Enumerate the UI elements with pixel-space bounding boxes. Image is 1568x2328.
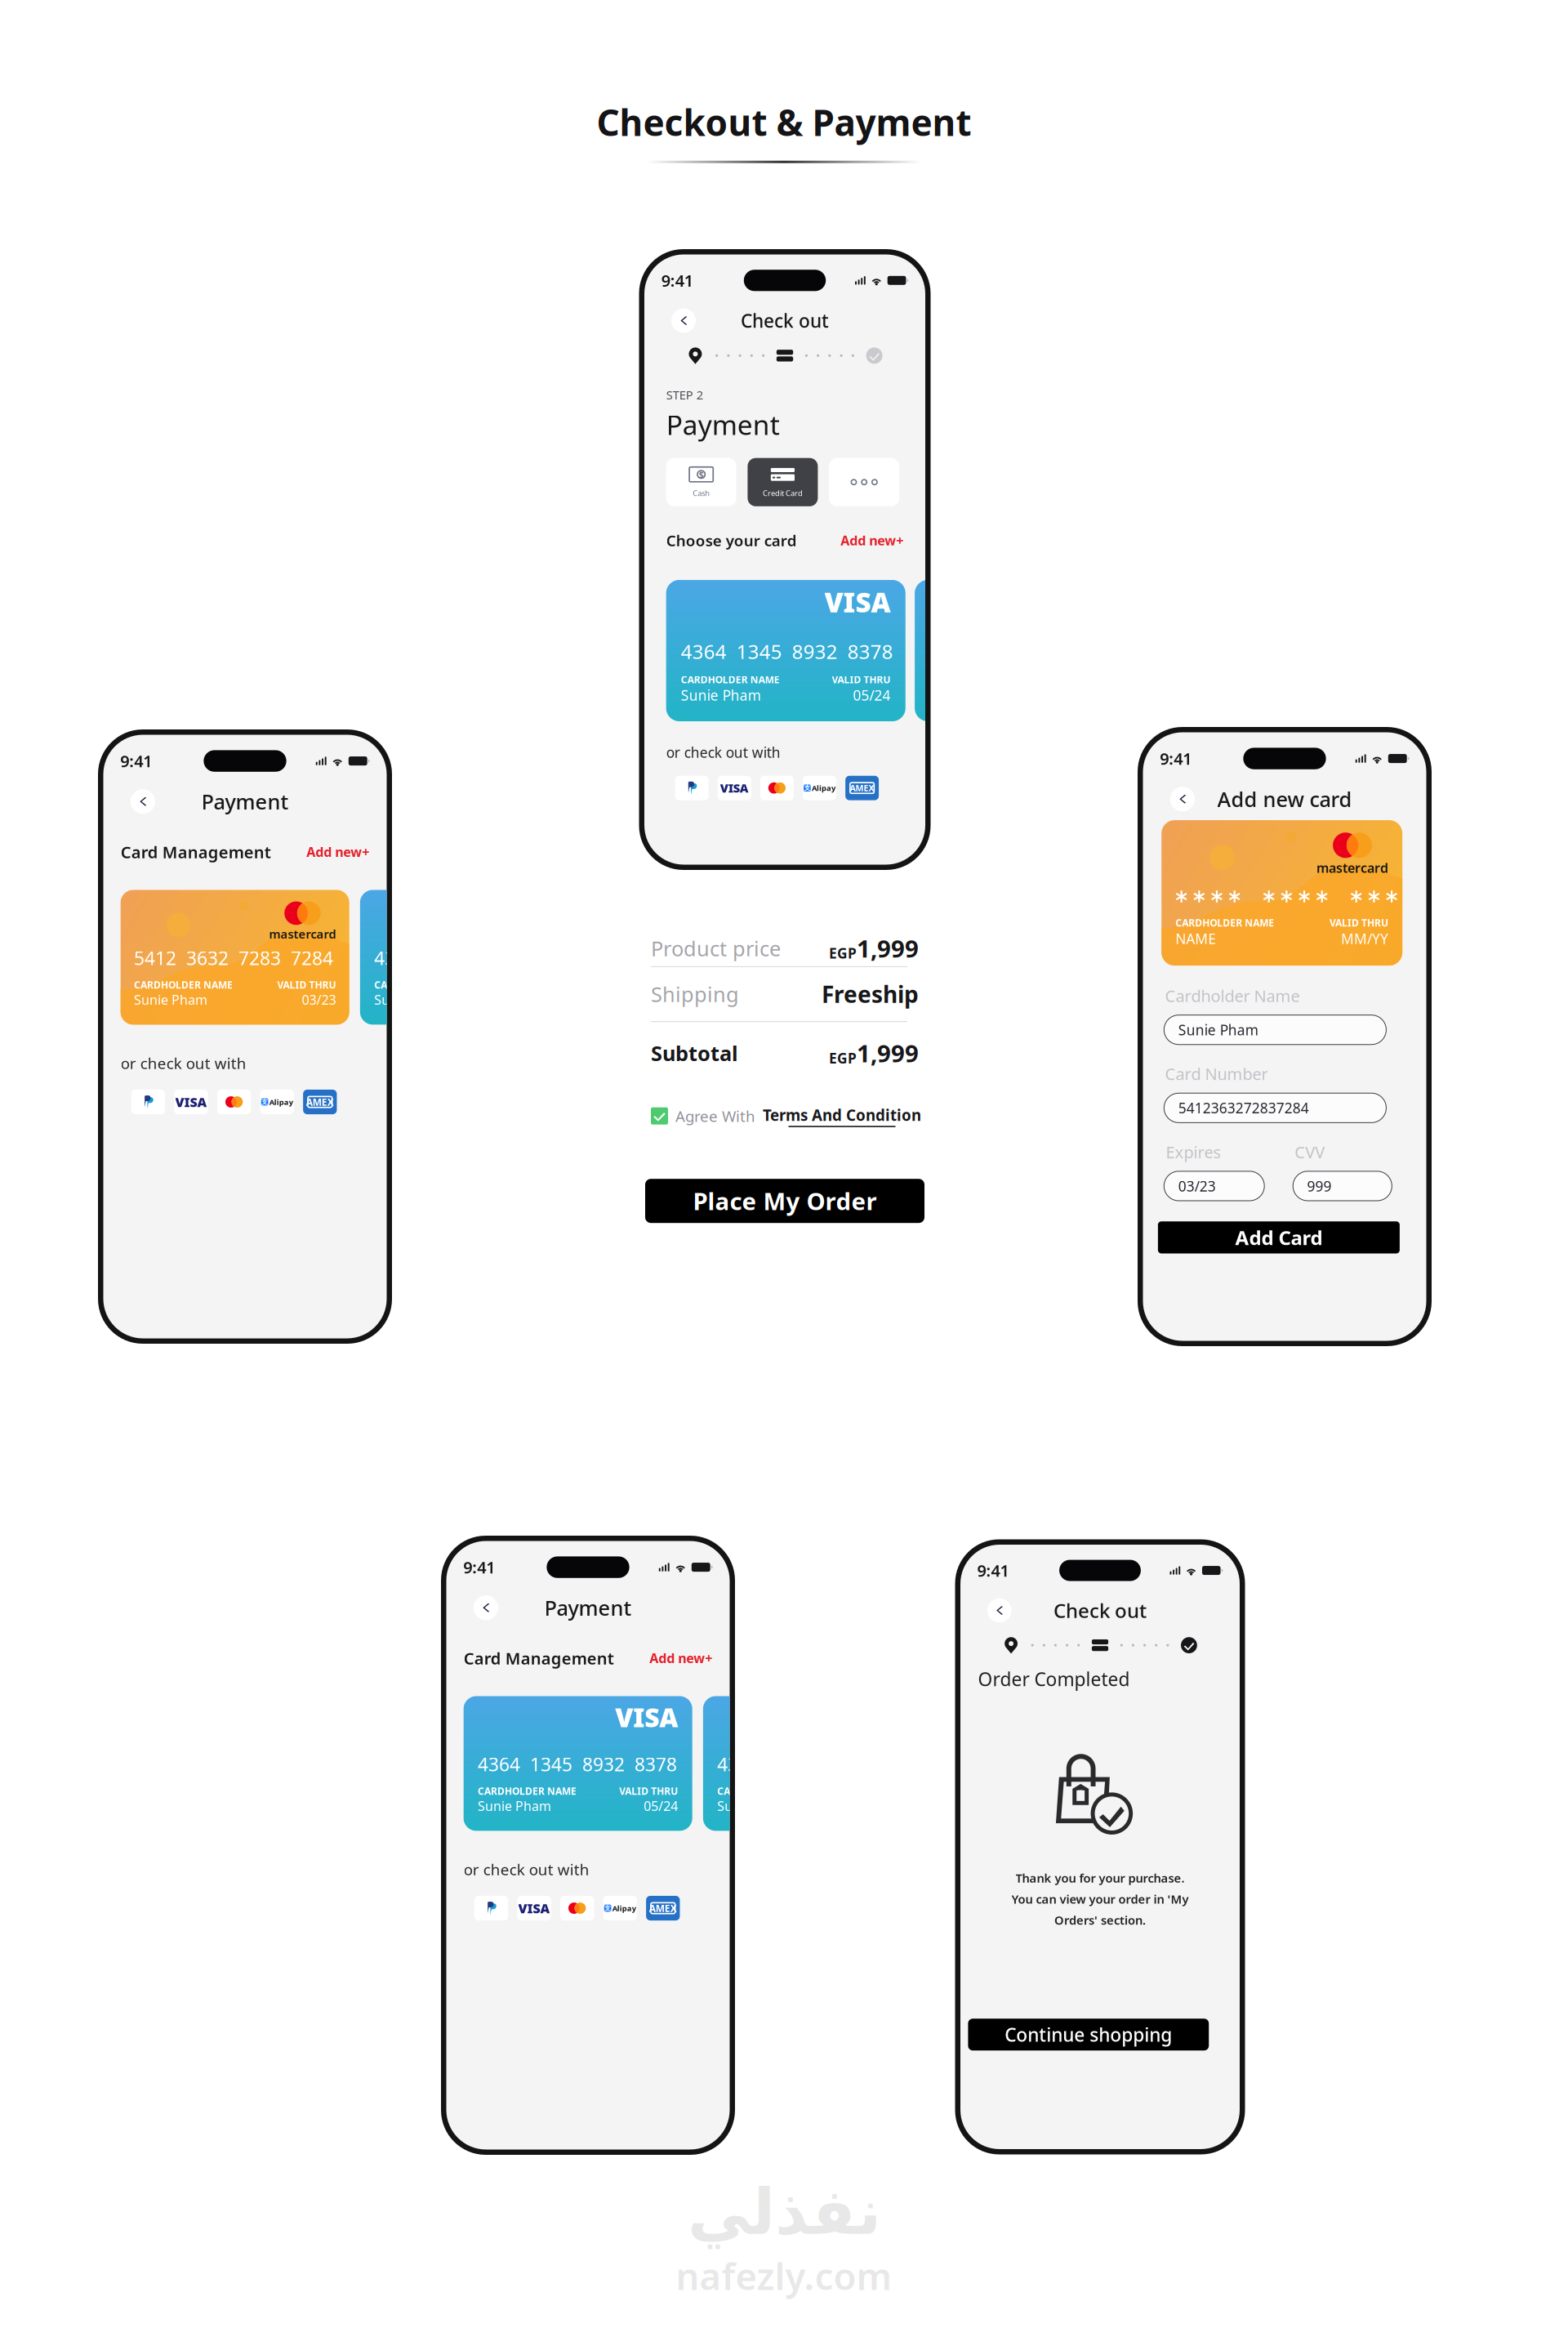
button[interactable]: Alipay bbox=[803, 776, 836, 800]
button[interactable]: 999 bbox=[1293, 1171, 1392, 1201]
staticText: 05/24 bbox=[644, 1797, 678, 1815]
staticText: CARDHOLDER NAME bbox=[717, 1785, 816, 1798]
button[interactable]: Add new+ bbox=[306, 843, 369, 861]
button[interactable]: Back bbox=[131, 789, 155, 814]
staticText: 4364 1345 8932 8378 bbox=[374, 946, 573, 970]
button[interactable]: 5412363272837284 bbox=[1164, 1093, 1386, 1123]
staticText: or check out with bbox=[666, 743, 780, 762]
button[interactable]: Add Card bbox=[1158, 1221, 1400, 1253]
staticText: VISA bbox=[825, 584, 891, 620]
staticText: VISA bbox=[720, 780, 749, 796]
staticText: 支 bbox=[261, 1098, 268, 1106]
staticText: STEP 2 bbox=[666, 387, 703, 403]
staticText: nafezly.com bbox=[676, 2251, 892, 2300]
button[interactable]: Add new+ bbox=[649, 1649, 712, 1667]
staticText: Sunie Pham bbox=[681, 686, 761, 705]
button[interactable]: American Express bbox=[845, 776, 879, 800]
staticText: Thank you for your purchase. bbox=[1016, 1870, 1185, 1886]
staticText: Alipay bbox=[612, 1903, 636, 1913]
staticText: VISA bbox=[615, 1700, 678, 1734]
staticText: Sunie Pham bbox=[134, 991, 207, 1008]
button[interactable]: Mastercard bbox=[217, 1090, 251, 1114]
staticText: CARDHOLDER NAME bbox=[1175, 916, 1274, 929]
staticText: 9:41 bbox=[977, 1560, 1009, 1581]
staticText: 4364 1345 8932 8378 bbox=[681, 638, 893, 664]
staticText: CARDHOLDER NAME bbox=[478, 1785, 577, 1798]
button[interactable]: PayPal bbox=[675, 776, 709, 800]
button[interactable]: Continue shopping bbox=[968, 2019, 1209, 2051]
staticText: Orders' section. bbox=[1054, 1912, 1146, 1928]
staticText: Shipping bbox=[651, 980, 739, 1008]
staticText: Sunie Pham bbox=[374, 991, 448, 1008]
button[interactable]: Back bbox=[987, 1598, 1012, 1623]
staticText: Add new+ bbox=[649, 1649, 712, 1667]
staticText: 5412 3632 7283 7284 bbox=[134, 946, 333, 970]
staticText: Add new card bbox=[1217, 785, 1352, 813]
staticText: mastercard bbox=[1317, 859, 1388, 876]
staticText: VALID THRU bbox=[277, 978, 336, 991]
staticText: Cardholder Name bbox=[1165, 985, 1300, 1007]
staticText: Cash bbox=[693, 488, 710, 498]
button[interactable] bbox=[829, 458, 899, 506]
staticText: Order Completed bbox=[978, 1667, 1130, 1691]
staticText: Checkout & Payment bbox=[597, 98, 971, 146]
button[interactable]: PayPal bbox=[474, 1896, 508, 1920]
button[interactable]: Visa bbox=[174, 1090, 208, 1114]
staticText: VALID THRU bbox=[1330, 916, 1388, 929]
staticText: AMEX bbox=[850, 782, 874, 794]
button[interactable]: Credit Card bbox=[748, 458, 818, 506]
staticText: Terms And Condition bbox=[763, 1105, 921, 1125]
button[interactable]: American Express bbox=[303, 1090, 337, 1114]
staticText: 03/23 bbox=[302, 991, 336, 1008]
staticText: Expires bbox=[1166, 1141, 1221, 1163]
button[interactable]: American Express bbox=[646, 1896, 680, 1920]
staticText: Agree With bbox=[675, 1106, 755, 1126]
staticText: You can view your order in 'My bbox=[1011, 1891, 1189, 1907]
button[interactable]: Alipay bbox=[603, 1896, 637, 1920]
staticText: mastercard bbox=[269, 926, 336, 942]
staticText: Place My Order bbox=[693, 1185, 877, 1217]
staticText: CARDHOLDER NAME bbox=[681, 673, 780, 686]
button[interactable]: Agree With bbox=[651, 1104, 919, 1128]
staticText: نفذلي bbox=[687, 2176, 881, 2248]
button[interactable]: Mastercard bbox=[760, 776, 794, 800]
button[interactable]: 03/23 bbox=[1164, 1171, 1264, 1201]
staticText: CARDHOLDER NAME bbox=[374, 978, 473, 991]
button[interactable]: Visa bbox=[517, 1896, 551, 1920]
staticText: Product price bbox=[651, 934, 781, 962]
staticText: 4364 1345 8932 8378 bbox=[930, 638, 1142, 664]
staticText: Add new+ bbox=[306, 843, 369, 861]
button[interactable]: Sunie Pham bbox=[1164, 1015, 1386, 1044]
staticText: 9:41 bbox=[1160, 748, 1192, 769]
staticText: 4364 1345 8932 8378 bbox=[478, 1752, 677, 1776]
staticText: 支 bbox=[804, 784, 810, 792]
staticText: Sunie Pham bbox=[1178, 1020, 1258, 1039]
staticText: 05/24 bbox=[853, 686, 891, 705]
button[interactable]: Visa bbox=[718, 776, 751, 800]
button[interactable]: Place My Order bbox=[645, 1179, 924, 1223]
button[interactable]: Add new+ bbox=[841, 532, 903, 549]
staticText: EGP bbox=[829, 944, 857, 962]
staticText: Choose your card bbox=[666, 530, 797, 550]
staticText: or check out with bbox=[121, 1053, 246, 1073]
staticText: 5412363272837284 bbox=[1178, 1098, 1309, 1117]
button[interactable]: Back bbox=[671, 308, 696, 333]
staticText: VALID THRU bbox=[832, 673, 891, 686]
button[interactable]: PayPal bbox=[131, 1090, 165, 1114]
button[interactable]: Alipay bbox=[260, 1090, 294, 1114]
button[interactable]: Back bbox=[1170, 787, 1195, 811]
staticText: MM/YY bbox=[1341, 929, 1388, 948]
staticText: VALID THRU bbox=[619, 1785, 678, 1798]
button[interactable]: Back bbox=[474, 1595, 498, 1620]
button[interactable]: $ bbox=[666, 458, 736, 506]
staticText: $ bbox=[699, 469, 704, 480]
button[interactable]: Mastercard bbox=[560, 1896, 594, 1920]
staticText: AMEX bbox=[306, 1095, 334, 1108]
staticText: 9:41 bbox=[120, 750, 152, 772]
staticText: Check out bbox=[741, 308, 829, 333]
